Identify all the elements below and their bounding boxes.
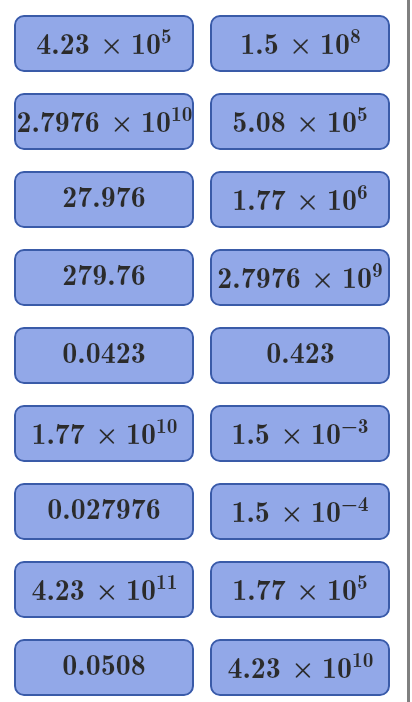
button[interactable]: 1.5 × 108 xyxy=(210,15,390,72)
staticText: 279.76 xyxy=(62,251,146,294)
button[interactable]: 0.0423 xyxy=(14,327,194,384)
staticText: 1.77 × 1010 xyxy=(31,409,178,453)
staticText: 1.5 × 10−4 xyxy=(231,487,369,531)
staticText: 0.423 xyxy=(266,329,335,372)
staticText: 5.08 × 105 xyxy=(232,97,368,141)
button[interactable]: 4.23 × 1011 xyxy=(14,561,194,618)
button[interactable]: 1.77 × 106 xyxy=(210,171,390,228)
button[interactable]: 0.027976 xyxy=(14,483,194,540)
staticText: 1.77 × 106 xyxy=(232,175,368,219)
button[interactable]: 5.08 × 105 xyxy=(210,93,390,150)
staticText: 27.976 xyxy=(62,173,146,216)
staticText: 4.23 × 1010 xyxy=(227,643,374,687)
staticText: 4.23 × 105 xyxy=(36,19,172,63)
staticText: 2.7976 × 1010 xyxy=(16,97,193,141)
button[interactable]: 0.423 xyxy=(210,327,390,384)
staticText: 1.5 × 10−3 xyxy=(231,409,369,453)
button[interactable]: 279.76 xyxy=(14,249,194,306)
staticText: 1.5 × 108 xyxy=(240,19,361,63)
staticText: 0.0508 xyxy=(62,641,146,684)
button[interactable]: 2.7976 × 109 xyxy=(210,249,390,306)
button[interactable]: 1.5 × 10−4 xyxy=(210,483,390,540)
button[interactable]: 4.23 × 1010 xyxy=(210,639,390,696)
staticText: 4.23 × 1011 xyxy=(31,565,178,609)
button[interactable]: 4.23 × 105 xyxy=(14,15,194,72)
staticText: 1.77 × 105 xyxy=(232,565,368,609)
button[interactable]: 1.5 × 10−3 xyxy=(210,405,390,462)
staticText: 0.027976 xyxy=(47,485,161,528)
staticText: 2.7976 × 109 xyxy=(217,253,383,297)
staticText: 0.0423 xyxy=(62,329,146,372)
button[interactable]: 0.0508 xyxy=(14,639,194,696)
button[interactable]: 27.976 xyxy=(14,171,194,228)
button[interactable]: 2.7976 × 1010 xyxy=(14,93,194,150)
button[interactable]: 1.77 × 105 xyxy=(210,561,390,618)
button[interactable]: 1.77 × 1010 xyxy=(14,405,194,462)
